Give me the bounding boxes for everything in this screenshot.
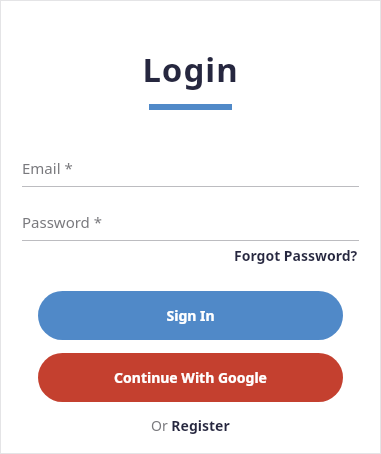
staticText: Continue With Google (114, 368, 267, 387)
staticText: Login (142, 47, 239, 92)
staticText: Forgot Password? (234, 246, 358, 265)
staticText: Sign In (166, 306, 215, 325)
staticText: Or Register (151, 416, 230, 435)
staticText: Password * (22, 212, 103, 232)
button[interactable]: Or Register (145, 413, 236, 438)
staticText: Email * (22, 158, 73, 178)
button[interactable]: Password * (22, 212, 359, 241)
button[interactable]: Sign In (38, 291, 343, 340)
button[interactable]: Email * (22, 158, 359, 187)
button[interactable]: Continue With Google (38, 353, 343, 402)
button[interactable]: Forgot Password? (234, 246, 358, 265)
